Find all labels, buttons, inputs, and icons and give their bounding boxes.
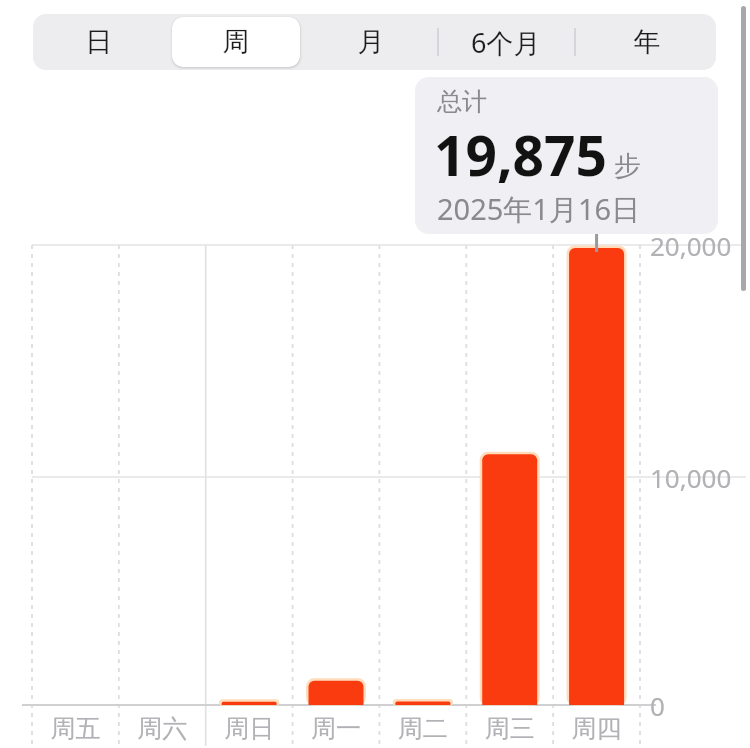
button[interactable]: 月 xyxy=(304,14,438,70)
button[interactable]: 6个月 xyxy=(438,14,575,70)
button[interactable]: 日 xyxy=(33,14,168,70)
button[interactable]: 总计 19,875 步 2025年1月16日 xyxy=(415,77,718,234)
button[interactable]: 周 xyxy=(168,14,304,70)
button[interactable]: 年 xyxy=(575,14,716,70)
